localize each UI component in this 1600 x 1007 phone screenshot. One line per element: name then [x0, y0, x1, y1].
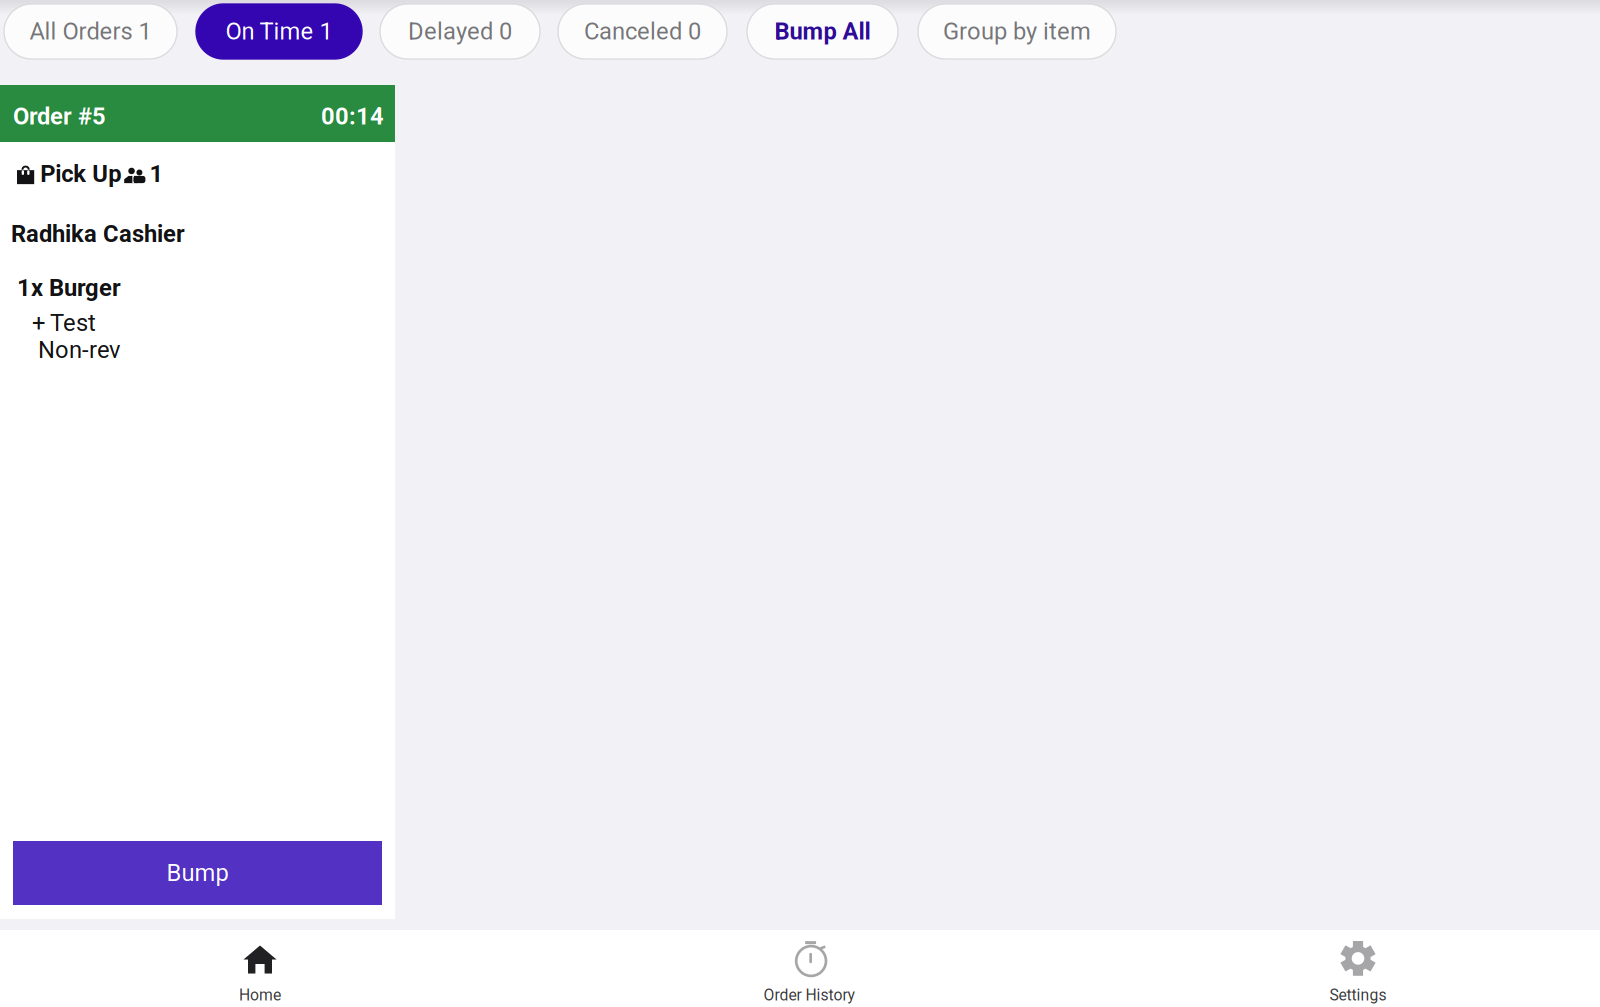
staticText: Pick Up — [40, 160, 121, 188]
staticText: Order History — [763, 986, 854, 1004]
button[interactable]: Order History — [709, 930, 909, 1007]
button[interactable]: Canceled 0 — [558, 4, 727, 59]
staticText: 1 — [149, 160, 163, 188]
button[interactable]: Group by item — [918, 4, 1116, 59]
staticText: + Test — [32, 309, 96, 337]
staticText: Settings — [1329, 986, 1386, 1004]
staticText: All Orders 1 — [29, 18, 151, 45]
staticText: 00:14 — [321, 103, 384, 130]
staticText: Delayed 0 — [408, 18, 512, 45]
staticText: Order #5 — [13, 103, 106, 130]
button[interactable]: Bump — [13, 841, 382, 905]
staticText: Canceled 0 — [584, 18, 701, 45]
staticText: Home — [239, 986, 281, 1004]
button[interactable]: On Time 1 — [196, 4, 362, 59]
button[interactable]: Bump All — [747, 4, 898, 59]
staticText: Radhika Cashier — [11, 220, 185, 248]
staticText: Bump All — [774, 18, 870, 45]
button[interactable]: Delayed 0 — [380, 4, 540, 59]
staticText: 1x Burger — [17, 274, 121, 302]
staticText: Bump — [166, 859, 228, 887]
button[interactable]: Home — [160, 930, 360, 1007]
staticText: Group by item — [943, 18, 1091, 45]
staticText: On Time 1 — [225, 18, 332, 45]
staticText: Non-rev — [38, 336, 120, 364]
button[interactable]: All Orders 1 — [4, 4, 177, 59]
button[interactable]: Settings — [1258, 930, 1458, 1007]
